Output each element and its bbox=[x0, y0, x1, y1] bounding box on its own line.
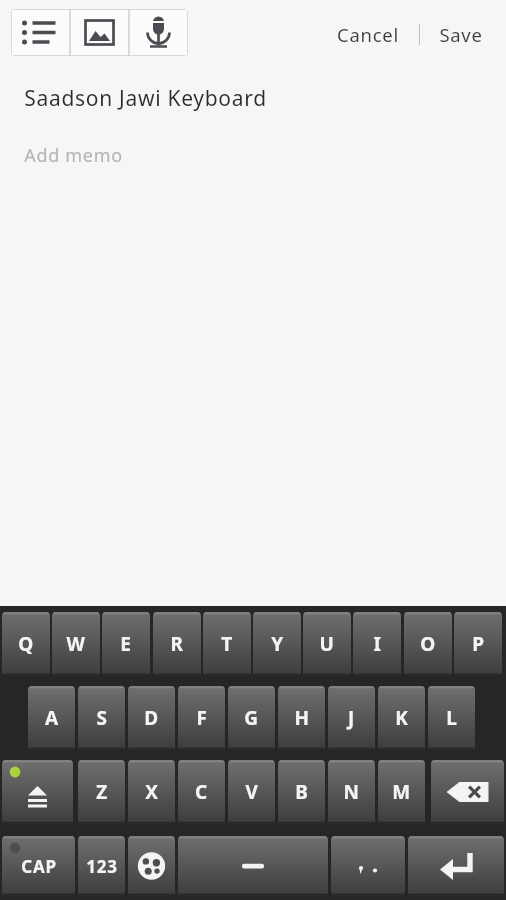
button[interactable]: Add memo bbox=[24, 143, 506, 168]
staticText: R bbox=[170, 631, 184, 657]
staticText: E bbox=[120, 631, 132, 657]
button[interactable]: Voice input bbox=[129, 9, 188, 56]
button[interactable]: Key bbox=[2, 760, 73, 824]
button[interactable]: List bbox=[11, 9, 70, 56]
staticText: J bbox=[348, 705, 355, 731]
button[interactable]: S bbox=[78, 686, 125, 750]
staticText: Z bbox=[96, 779, 108, 805]
button[interactable]: Comma and period bbox=[331, 836, 405, 896]
button[interactable]: Backspace bbox=[431, 760, 504, 824]
button[interactable]: W bbox=[52, 612, 100, 676]
staticText: H bbox=[294, 705, 310, 731]
button[interactable]: N bbox=[328, 760, 375, 824]
button[interactable]: F bbox=[178, 686, 225, 750]
staticText: I bbox=[373, 631, 382, 657]
staticText: F bbox=[196, 705, 208, 731]
button[interactable]: I bbox=[353, 612, 401, 676]
button[interactable]: Enter bbox=[408, 836, 504, 896]
staticText: K bbox=[395, 705, 409, 731]
staticText: O bbox=[420, 631, 436, 657]
staticText: A bbox=[45, 705, 59, 731]
staticText: V bbox=[245, 779, 259, 805]
staticText: B bbox=[295, 779, 309, 805]
staticText: T bbox=[221, 631, 233, 657]
button[interactable]: Y bbox=[253, 612, 301, 676]
button[interactable]: Space bbox=[178, 836, 328, 896]
staticText: Y bbox=[271, 631, 284, 657]
button[interactable]: CAP bbox=[2, 836, 75, 896]
button[interactable]: Save bbox=[430, 16, 492, 53]
staticText: Save bbox=[439, 22, 483, 47]
staticText: N bbox=[343, 779, 360, 805]
button[interactable]: G bbox=[228, 686, 275, 750]
button[interactable]: Change language bbox=[128, 836, 175, 896]
staticText: S bbox=[96, 705, 108, 731]
button[interactable]: 123 bbox=[78, 836, 125, 896]
button[interactable]: O bbox=[404, 612, 452, 676]
button[interactable]: A bbox=[28, 686, 75, 750]
staticText: U bbox=[319, 631, 335, 657]
staticText: X bbox=[145, 779, 159, 805]
staticText: Cancel bbox=[337, 22, 399, 47]
button[interactable]: Z bbox=[78, 760, 125, 824]
staticText: Add memo bbox=[24, 143, 123, 168]
button[interactable]: P bbox=[454, 612, 502, 676]
button[interactable]: D bbox=[128, 686, 175, 750]
button[interactable]: H bbox=[278, 686, 325, 750]
button[interactable]: M bbox=[378, 760, 425, 824]
button[interactable]: U bbox=[303, 612, 351, 676]
staticText: 123 bbox=[86, 855, 118, 878]
staticText: W bbox=[66, 631, 86, 657]
staticText: CAP bbox=[21, 855, 57, 878]
button[interactable]: B bbox=[278, 760, 325, 824]
staticText: G bbox=[244, 705, 259, 731]
button[interactable]: X bbox=[128, 760, 175, 824]
staticText: D bbox=[144, 705, 159, 731]
staticText: Q bbox=[18, 631, 34, 657]
button[interactable]: Q bbox=[2, 612, 50, 676]
staticText: Saadson Jawi Keyboard bbox=[24, 84, 267, 113]
button[interactable]: Cancel bbox=[327, 16, 409, 53]
button[interactable]: L bbox=[428, 686, 475, 750]
button[interactable]: R bbox=[153, 612, 201, 676]
button[interactable]: K bbox=[378, 686, 425, 750]
button[interactable]: J bbox=[328, 686, 375, 750]
button[interactable]: E bbox=[102, 612, 150, 676]
button[interactable]: C bbox=[178, 760, 225, 824]
staticText: L bbox=[446, 705, 458, 731]
staticText: P bbox=[472, 631, 485, 657]
button[interactable]: T bbox=[203, 612, 251, 676]
button[interactable]: Insert image bbox=[70, 9, 129, 56]
staticText: M bbox=[392, 779, 411, 805]
staticText: C bbox=[195, 779, 208, 805]
button[interactable]: V bbox=[228, 760, 275, 824]
